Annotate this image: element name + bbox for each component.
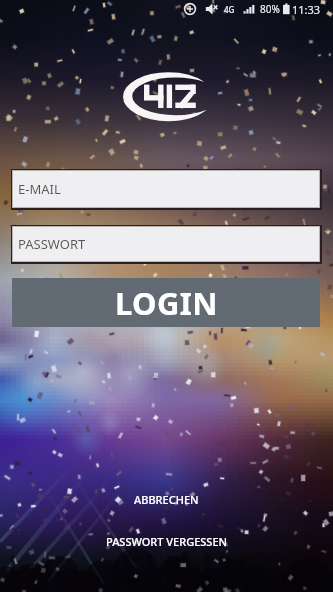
button[interactable]: E-MAIL	[13, 171, 319, 207]
staticText: PASSWORT	[18, 235, 86, 253]
button[interactable]: PASSWORT VERGESSEN	[0, 528, 333, 554]
staticText: LOGIN	[115, 282, 218, 324]
staticText: PASSWORT VERGESSEN	[106, 534, 228, 549]
staticText: E-MAIL	[18, 180, 61, 198]
staticText: 4G	[224, 4, 235, 15]
staticText: 80%	[260, 2, 280, 16]
button[interactable]: LOGIN	[12, 278, 320, 327]
staticText: ABBRECHEN	[134, 492, 199, 507]
staticText: 11:33	[292, 2, 321, 17]
button[interactable]: ABBRECHEN	[0, 486, 333, 512]
button[interactable]: PASSWORT	[13, 227, 319, 261]
